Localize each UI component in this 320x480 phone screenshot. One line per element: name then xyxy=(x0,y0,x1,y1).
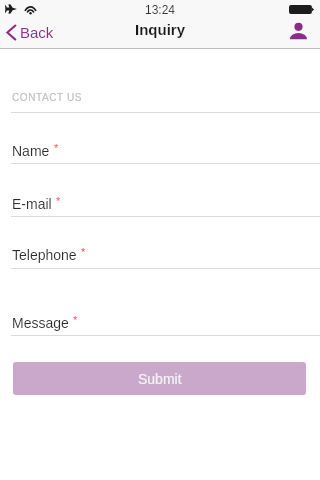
staticText: Telephone xyxy=(12,247,77,263)
button[interactable]: E-mail xyxy=(0,184,320,217)
staticText: Submit xyxy=(138,371,182,387)
button[interactable]: Submit xyxy=(13,362,306,395)
button[interactable]: Message xyxy=(0,303,320,336)
staticText: * xyxy=(73,314,78,326)
staticText: CONTACT US xyxy=(12,92,83,103)
button[interactable]: Name xyxy=(0,131,320,164)
button[interactable]: Back xyxy=(0,19,60,45)
staticText: * xyxy=(81,246,86,258)
staticText: Inquiry xyxy=(0,21,320,38)
staticText: * xyxy=(54,142,59,154)
staticText: Message xyxy=(12,315,69,331)
staticText: Back xyxy=(20,24,54,41)
button[interactable]: Account xyxy=(285,18,313,46)
staticText: * xyxy=(56,195,61,207)
staticText: E-mail xyxy=(12,196,52,212)
staticText: Name xyxy=(12,143,50,159)
button[interactable]: Telephone xyxy=(0,235,320,269)
staticText: 13:24 xyxy=(0,3,320,16)
